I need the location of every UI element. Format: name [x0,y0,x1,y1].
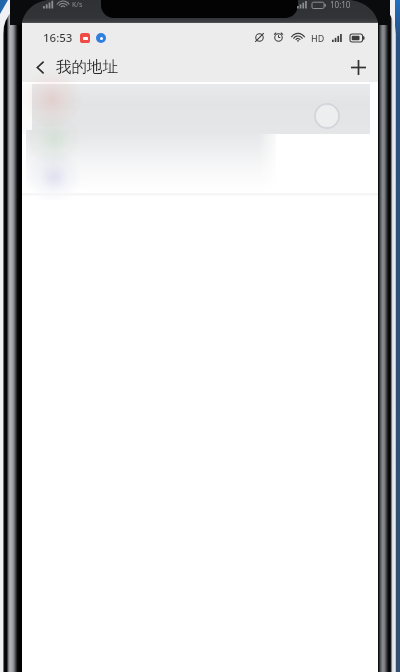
button[interactable]: Back [26,53,54,81]
staticText: HD [311,32,325,44]
staticText: 我的地址 [56,57,118,77]
staticText: K/s [72,0,83,10]
staticText: 10:10 [330,0,351,10]
button[interactable] [22,82,378,200]
button[interactable]: Add address [341,52,375,82]
staticText: 16:53 [43,30,73,46]
